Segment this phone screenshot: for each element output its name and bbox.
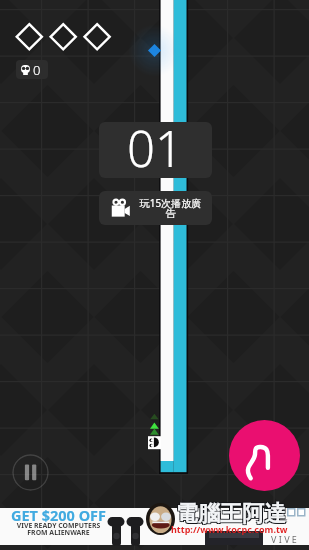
staticText: FROM ALIENWARE [0,528,117,537]
button[interactable]: Deaths 0 [16,60,48,79]
button[interactable]: 玩15次播放廣告 [99,191,212,225]
staticText: 0 [33,61,41,79]
button[interactable]: Life 1 [16,24,42,50]
staticText: 電腦王阿達 [175,501,285,529]
staticText: GET $200 OFF [0,505,117,525]
staticText: V I V E [271,533,297,545]
button[interactable]: Level map [229,420,300,491]
button[interactable]: Pause [12,454,49,491]
staticText: 電腦王阿達 [175,499,285,527]
staticText: http://www.kocpc.com.tw [171,523,288,535]
button[interactable]: 01 [99,122,212,178]
button[interactable]: Life 3 [84,24,110,50]
staticText: 電腦王阿達 [177,499,287,527]
staticText: VIVE READY COMPUTERS [0,521,117,530]
staticText: 玩15次播放廣告 [139,196,202,220]
button[interactable]: Life 2 [50,24,76,50]
staticText: 01 [127,122,183,171]
staticText: 電腦王阿達 [176,500,286,528]
button[interactable]: Advertisement [0,508,309,545]
staticText: 電腦王阿達 [177,501,287,529]
